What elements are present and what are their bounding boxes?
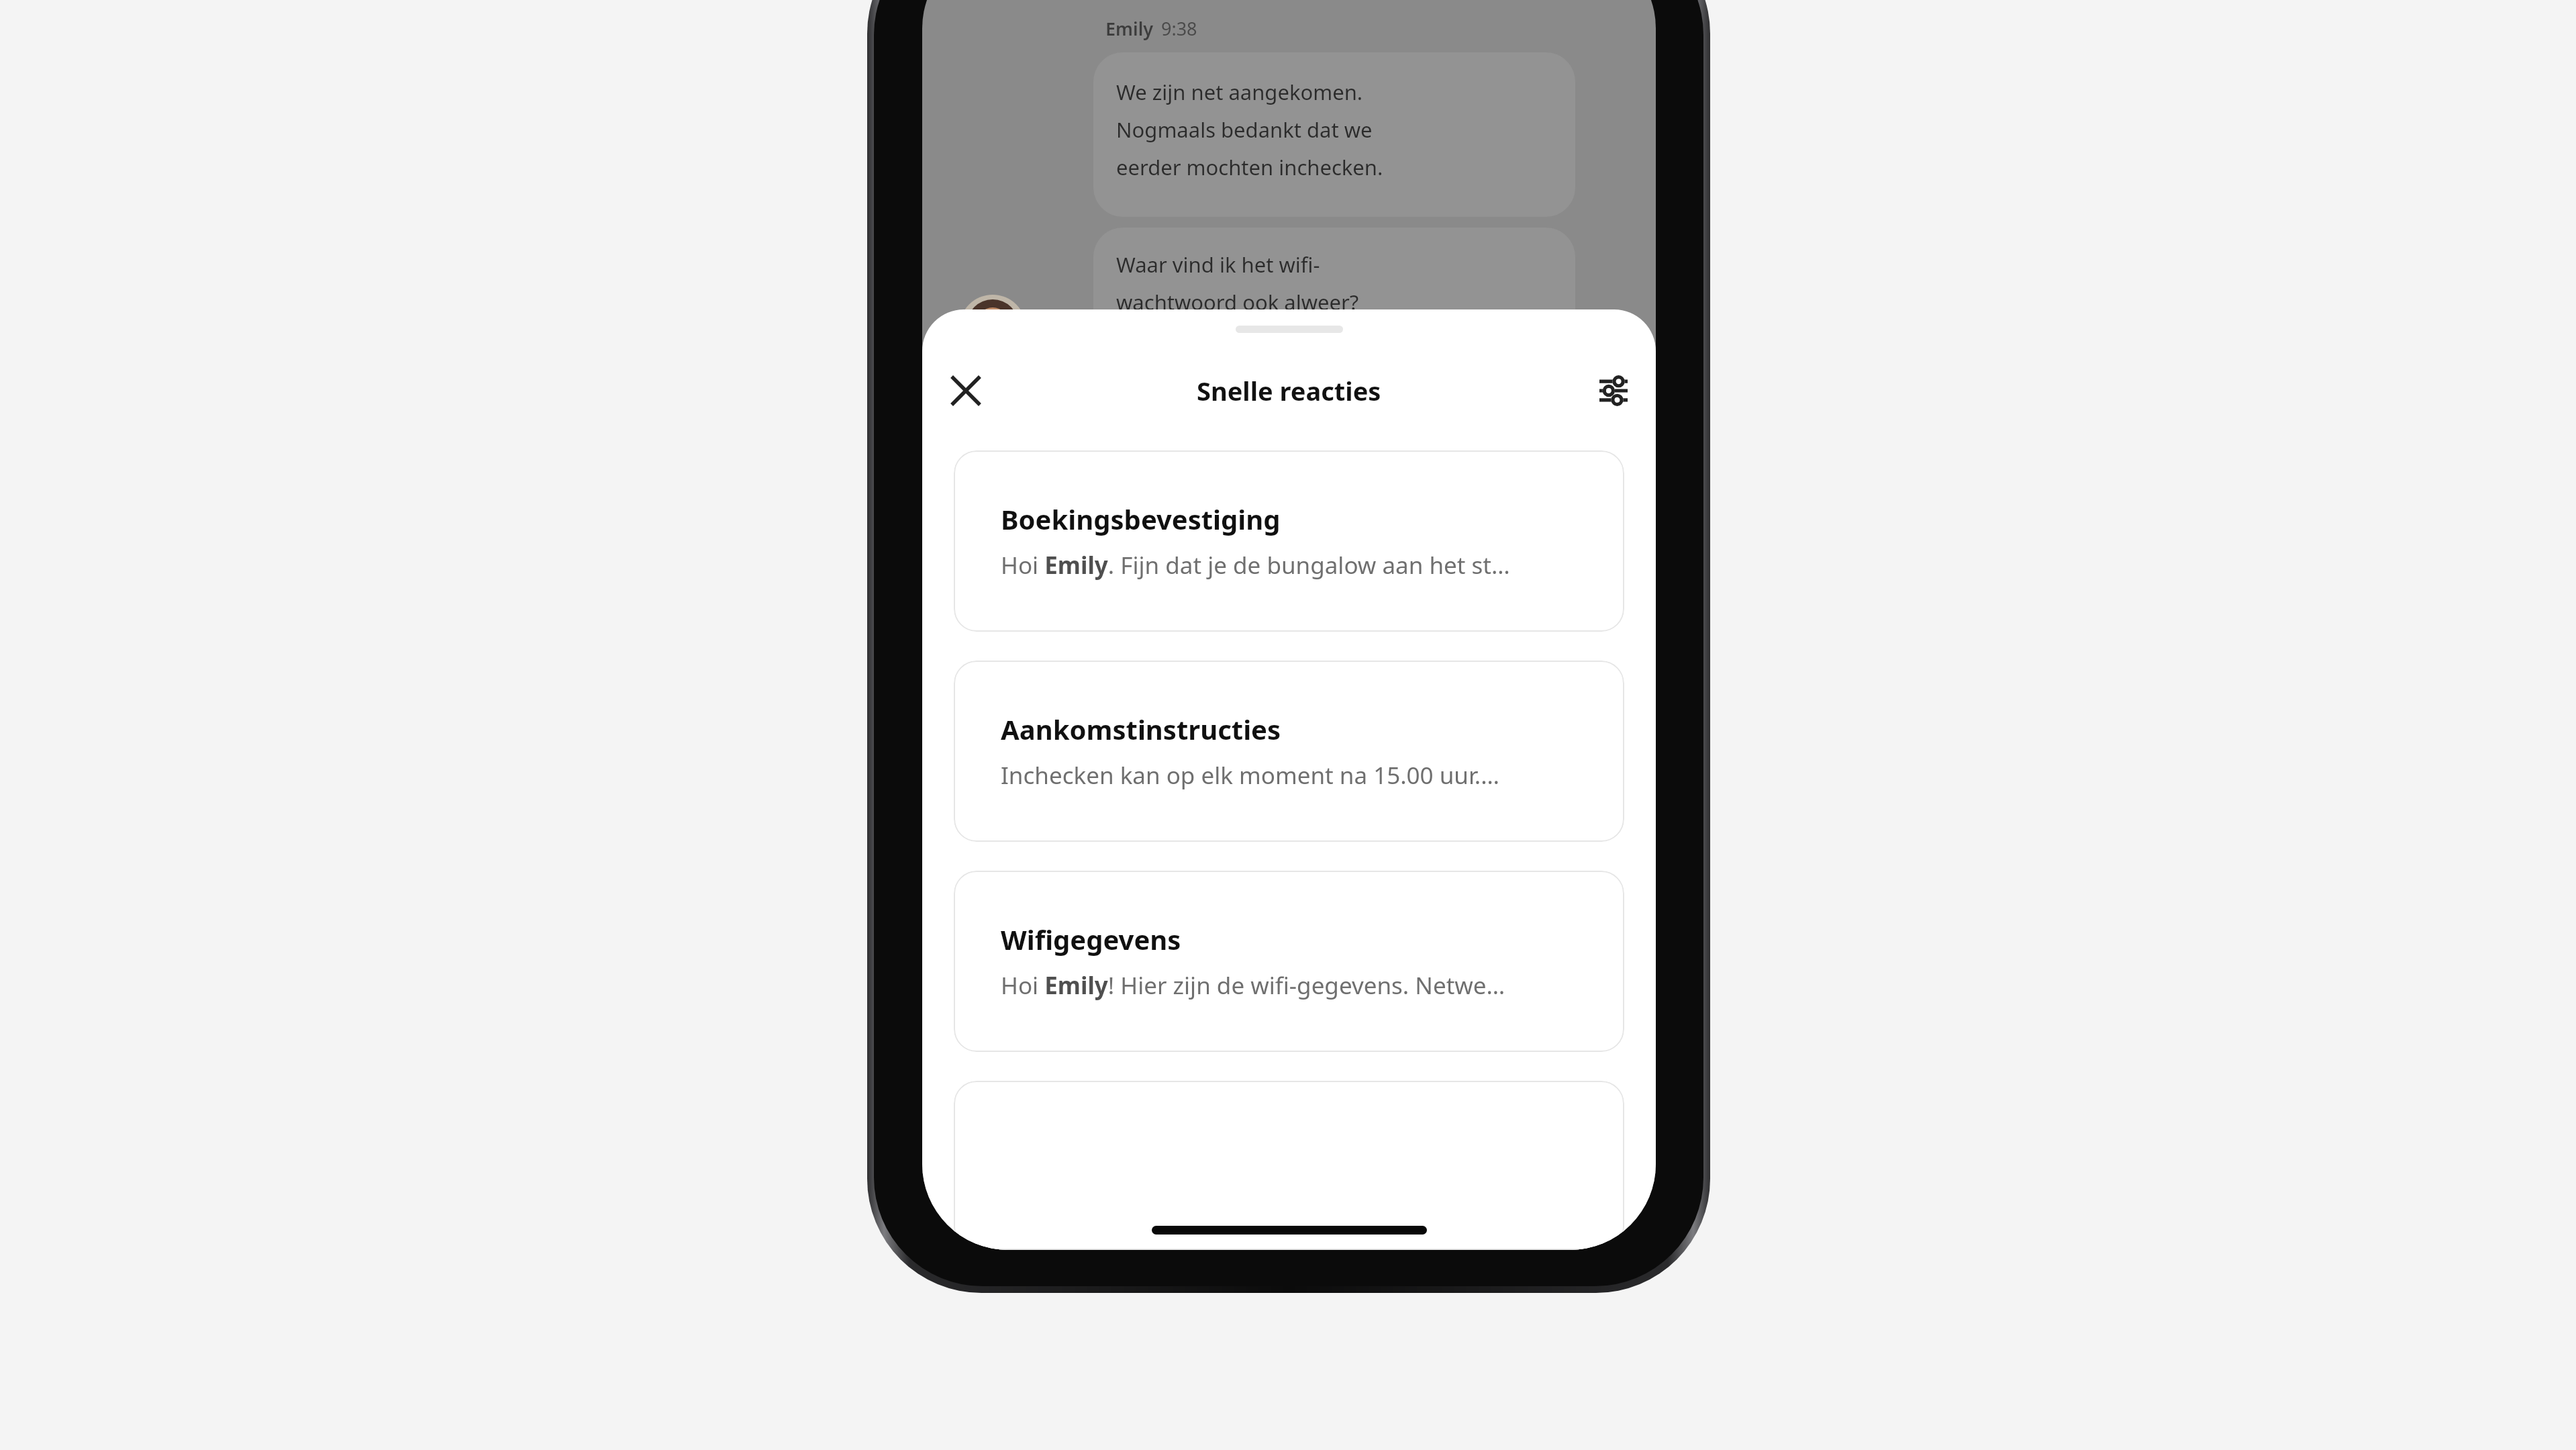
- staticText: Aankomstinstructies: [1001, 711, 1281, 747]
- staticText: Wifigegevens: [1001, 921, 1181, 957]
- staticText: 9:38: [1161, 16, 1197, 41]
- staticText: eerder mochten inchecken.: [1116, 153, 1383, 181]
- staticText: Emily: [1105, 16, 1154, 41]
- staticText: wachtwoord ook alweer?: [1116, 288, 1359, 316]
- button[interactable]: Boekingsbevestiging: [954, 450, 1624, 632]
- button[interactable]: Sluiten: [941, 366, 991, 416]
- button[interactable]: Aankomstinstructies: [954, 661, 1624, 842]
- staticText: Snelle reacties: [1197, 373, 1381, 408]
- button[interactable]: Instellingen: [1589, 366, 1638, 416]
- staticText: Hoi Emily. Fijn dat je de bungalow aan h…: [1001, 549, 1510, 581]
- staticText: Waar vind ik het wifi-: [1116, 250, 1320, 279]
- button[interactable]: Wifigegevens: [954, 871, 1624, 1052]
- staticText: Inchecken kan op elk moment na 15.00 uur…: [1001, 759, 1499, 791]
- staticText: Hoi Emily! Hier zijn de wifi-gegevens. N…: [1001, 969, 1505, 1002]
- staticText: Nogmaals bedankt dat we: [1116, 115, 1373, 144]
- staticText: We zijn net aangekomen.: [1116, 78, 1363, 106]
- button[interactable]: [954, 1081, 1624, 1250]
- staticText: Boekingsbevestiging: [1001, 501, 1281, 537]
